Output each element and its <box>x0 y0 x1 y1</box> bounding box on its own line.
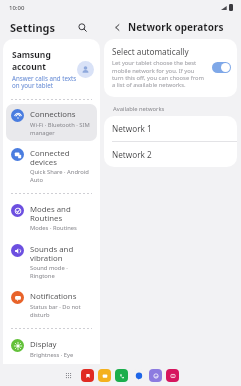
button[interactable]: App <box>81 369 94 382</box>
staticText: Let your tablet choose the best mobile n… <box>112 59 207 89</box>
button[interactable]: Samsung <box>3 45 100 96</box>
button[interactable]: App <box>115 369 128 382</box>
button[interactable]: Network 1 <box>104 116 237 141</box>
button[interactable]: App <box>132 369 145 382</box>
button[interactable]: All apps <box>61 368 75 382</box>
button[interactable]: App <box>98 369 111 382</box>
button[interactable]: Notifications <box>6 286 97 323</box>
staticText: Network operators <box>128 20 224 34</box>
staticText: Answer calls and texts on your tablet <box>12 74 77 90</box>
staticText: Samsung <box>12 49 51 61</box>
button[interactable]: Select automatically toggle <box>212 62 231 73</box>
staticText: Status bar · Do not disturb <box>30 303 93 318</box>
staticText: Network 1 <box>112 123 152 134</box>
staticText: Available networks <box>113 105 165 113</box>
staticText: account <box>12 61 46 73</box>
button[interactable]: Select automatically <box>104 39 237 97</box>
staticText: Brightness · Eye comfort shield · Naviga… <box>30 351 93 358</box>
button[interactable]: Connections <box>6 104 97 141</box>
staticText: Connections <box>30 109 76 120</box>
staticText: Select automatically <box>112 46 189 57</box>
button[interactable]: Search <box>74 19 90 35</box>
staticText: Quick Share · Android Auto <box>30 168 93 183</box>
staticText: Connected devices <box>30 148 93 167</box>
button[interactable]: Modes and Routines <box>6 199 97 237</box>
button[interactable]: App <box>149 369 162 382</box>
button[interactable]: App <box>166 369 179 382</box>
button[interactable]: Connected devices <box>6 143 97 188</box>
staticText: Wi-Fi · Bluetooth · SIM manager <box>30 121 93 136</box>
staticText: Notifications <box>30 291 77 302</box>
button[interactable]: Back <box>109 19 125 35</box>
staticText: Sounds and vibration <box>30 244 93 263</box>
staticText: Modes and Routines <box>30 204 93 223</box>
staticText: Sound mode · Ringtone <box>30 264 93 279</box>
staticText: Settings <box>10 20 56 35</box>
staticText: Display <box>30 339 57 350</box>
button[interactable]: Sounds and vibration <box>6 239 97 284</box>
staticText: Modes · Routines <box>30 224 77 232</box>
button[interactable]: Network 2 <box>104 142 237 167</box>
staticText: Network 2 <box>112 149 152 160</box>
staticText: 10:00 <box>9 4 25 12</box>
button[interactable]: Display <box>6 334 97 363</box>
